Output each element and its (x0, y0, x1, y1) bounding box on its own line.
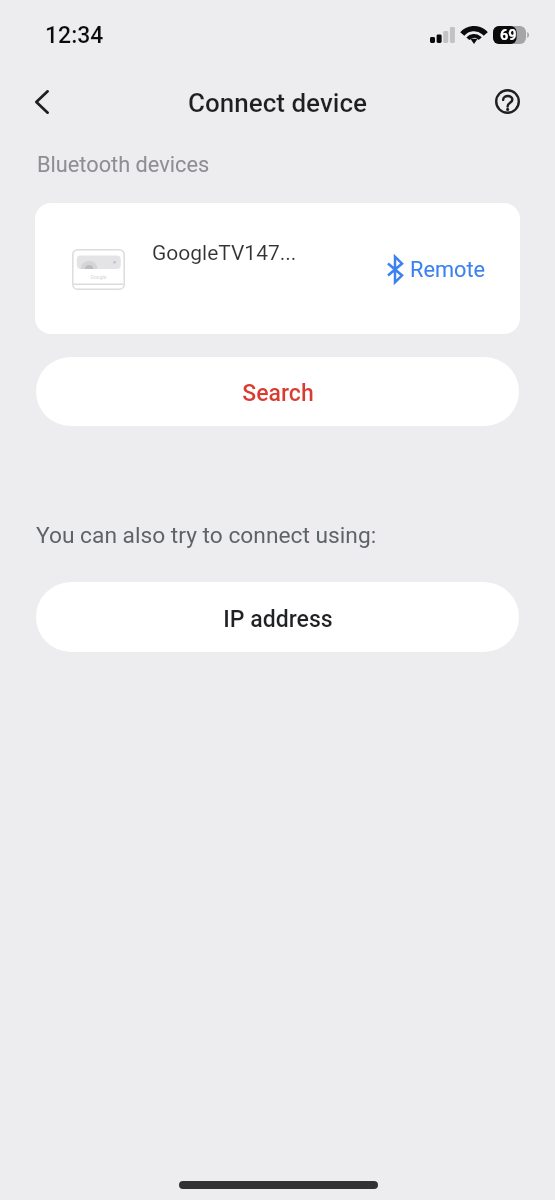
staticText: Search (242, 380, 314, 407)
staticText: Bluetooth devices (37, 152, 210, 177)
staticText: IP address (223, 606, 333, 633)
button[interactable]: Help (483, 77, 531, 125)
staticText: GoogleTV147... (152, 241, 297, 266)
staticText: Google (72, 274, 125, 280)
staticText: You can also try to connect using: (36, 522, 377, 549)
staticText: Remote (410, 257, 486, 282)
button[interactable]: Google (35, 203, 520, 334)
staticText: Connect device (0, 88, 555, 118)
staticText: 69 (500, 27, 517, 44)
button[interactable]: Back (18, 78, 66, 126)
button[interactable]: IP address (36, 582, 519, 652)
staticText: 12:34 (45, 22, 104, 49)
button[interactable]: Search (36, 357, 519, 426)
